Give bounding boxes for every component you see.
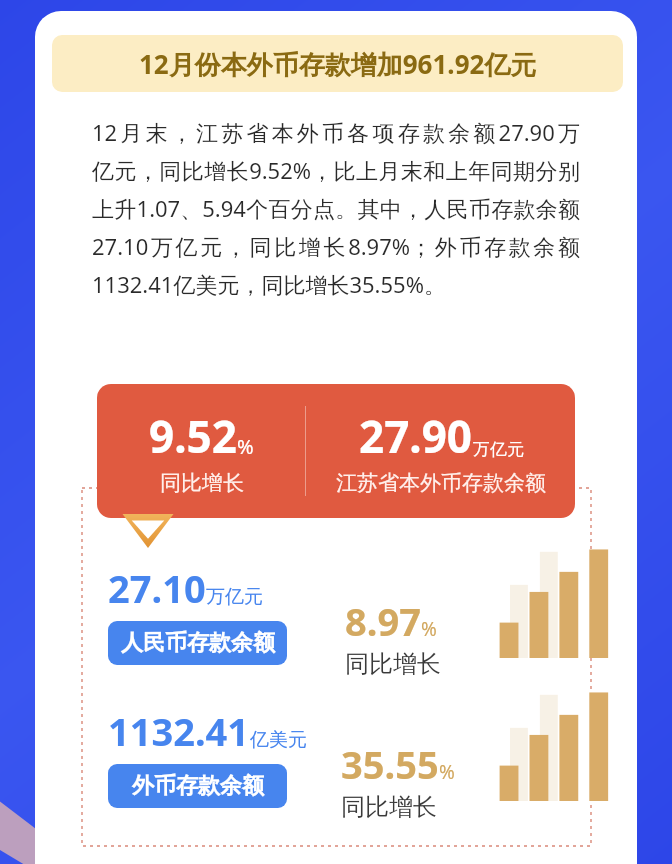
button[interactable]: 人民币存款余额 [108,621,287,665]
staticText: % [237,433,254,460]
staticText: % [439,759,455,785]
staticText: 8.97 [345,595,421,647]
button[interactable]: 12月份本外币存款增加961.92亿元 [52,35,623,92]
staticText: 1132.41 [108,705,250,757]
staticText: 同比增长 [160,470,244,496]
staticText: 江苏省本外币存款余额 [336,470,546,496]
staticText: 万亿元 [473,439,524,460]
staticText: 同比增长 [345,649,441,679]
staticText: 万亿元 [206,585,263,609]
button[interactable]: 9.52 [97,384,575,518]
staticText: % [421,616,437,642]
staticText: 人民币存款余额 [121,629,275,657]
staticText: 9.52 [149,406,237,466]
staticText: 12月份本外币存款增加961.92亿元 [139,46,537,82]
staticText: 27.10 [108,562,206,614]
staticText: 亿美元 [250,728,307,752]
staticText: 12月末，江苏省本外币各项存款余额27.90万亿元，同比增长9.52%，比上月末… [92,117,580,300]
staticText: 27.90 [359,406,473,466]
staticText: 35.55 [341,738,439,790]
staticText: 同比增长 [341,792,437,822]
staticText: 外币存款余额 [132,772,264,800]
button[interactable]: 外币存款余额 [108,764,287,808]
